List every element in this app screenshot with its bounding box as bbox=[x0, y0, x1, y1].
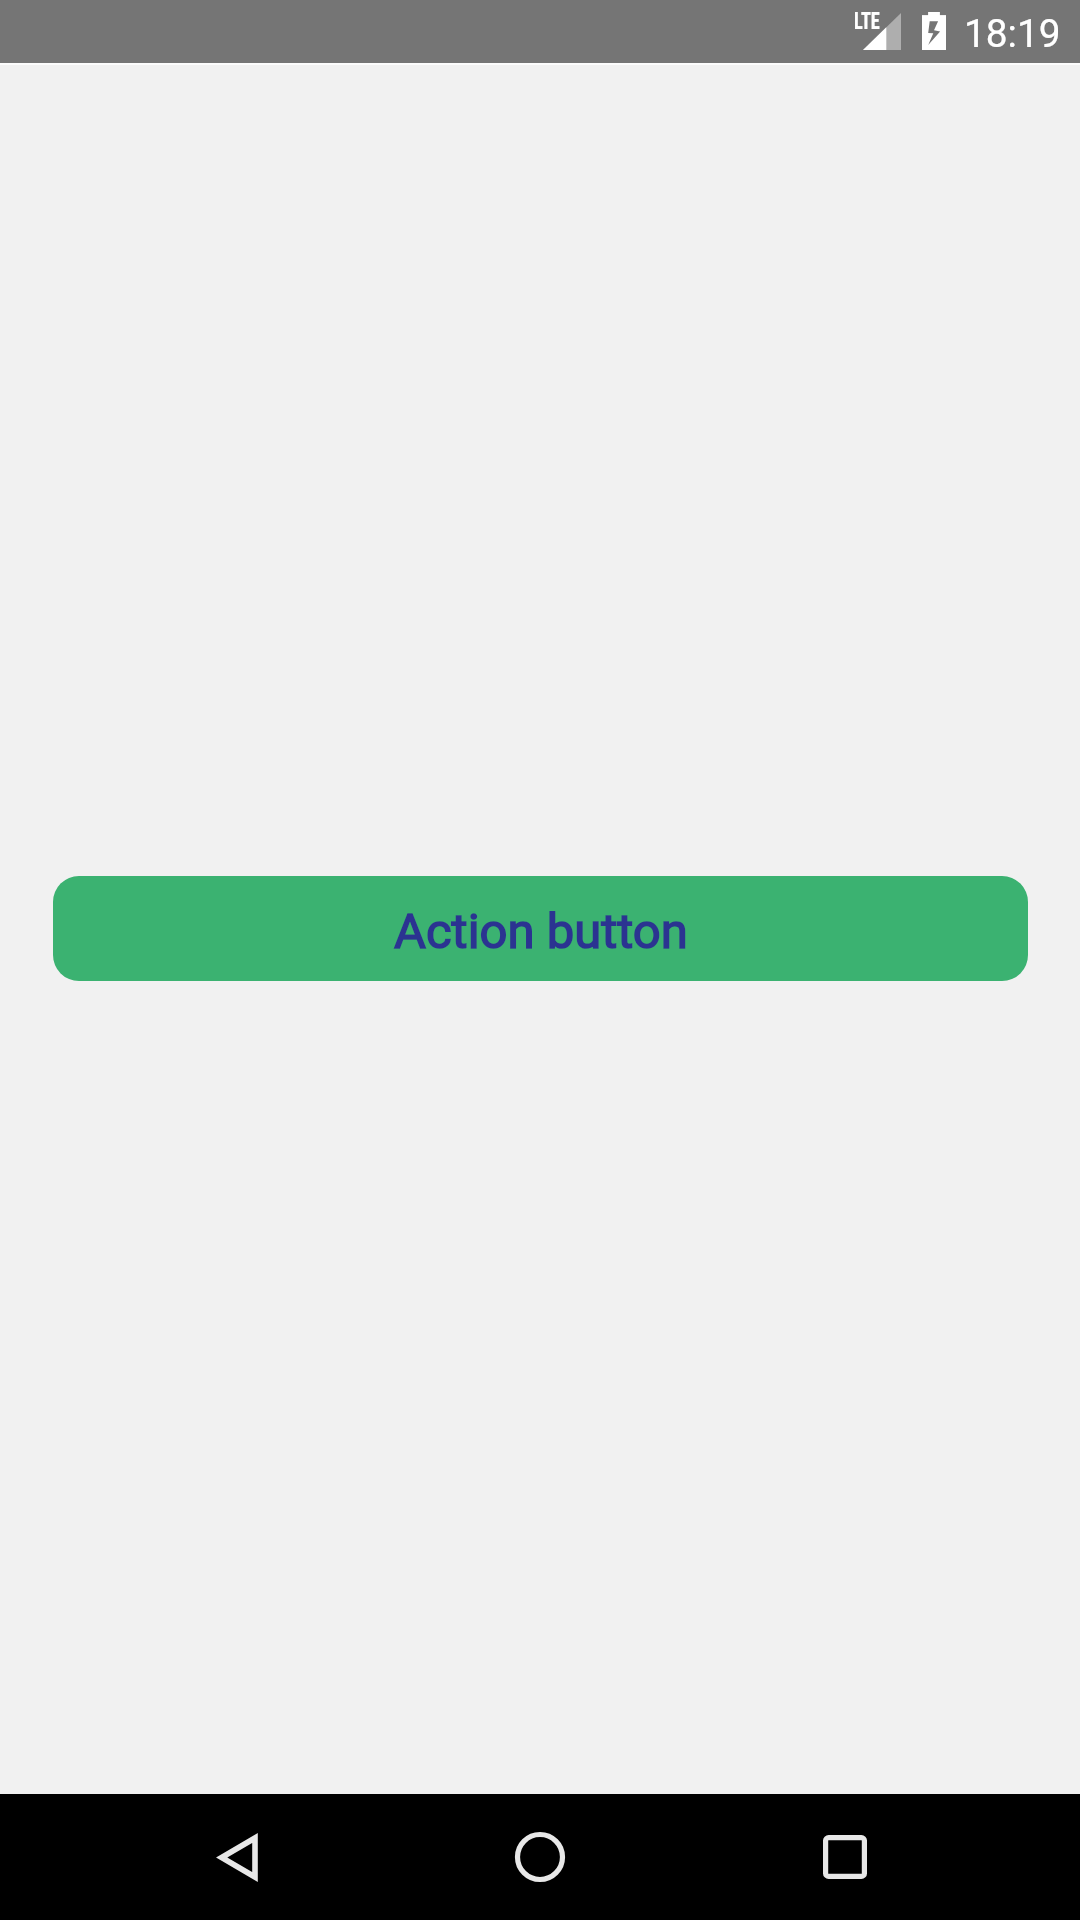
staticText: LTE bbox=[854, 7, 880, 35]
staticText: 18:19 bbox=[964, 11, 1061, 56]
button[interactable]: Home bbox=[464, 1794, 616, 1920]
button[interactable]: Action button bbox=[53, 876, 1028, 981]
staticText: Action button bbox=[394, 903, 688, 960]
button[interactable]: Back bbox=[162, 1794, 314, 1920]
button[interactable]: Recent apps bbox=[769, 1794, 921, 1920]
